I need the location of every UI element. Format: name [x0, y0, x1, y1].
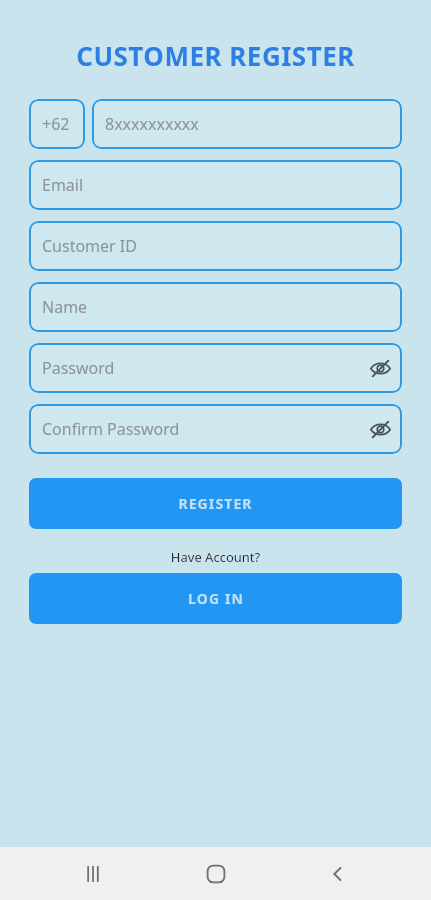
button[interactable]: Home: [187, 847, 245, 900]
staticText: Name: [42, 296, 88, 318]
button[interactable]: Confirm Password: [29, 404, 402, 454]
button[interactable]: Back: [309, 847, 367, 900]
staticText: Confirm Password: [42, 418, 358, 440]
staticText: REGISTER: [178, 494, 253, 513]
staticText: +62: [42, 113, 70, 135]
staticText: LOG IN: [188, 589, 244, 608]
button[interactable]: Password: [29, 343, 402, 393]
button[interactable]: 8xxxxxxxxxx: [92, 99, 402, 149]
button[interactable]: Customer ID: [29, 221, 402, 271]
staticText: Customer ID: [42, 235, 137, 257]
button[interactable]: REGISTER: [29, 478, 402, 529]
button[interactable]: Toggle password visibility: [358, 407, 402, 451]
staticText: 8xxxxxxxxxx: [105, 113, 199, 135]
button[interactable]: Name: [29, 282, 402, 332]
button[interactable]: LOG IN: [29, 573, 402, 624]
button[interactable]: Toggle password visibility: [358, 346, 402, 390]
staticText: Email: [42, 174, 84, 196]
staticText: Have Account?: [29, 548, 402, 566]
staticText: CUSTOMER REGISTER: [29, 38, 402, 73]
button[interactable]: Email: [29, 160, 402, 210]
button[interactable]: +62: [29, 99, 85, 149]
button[interactable]: Recent apps: [64, 847, 122, 900]
staticText: Password: [42, 357, 358, 379]
